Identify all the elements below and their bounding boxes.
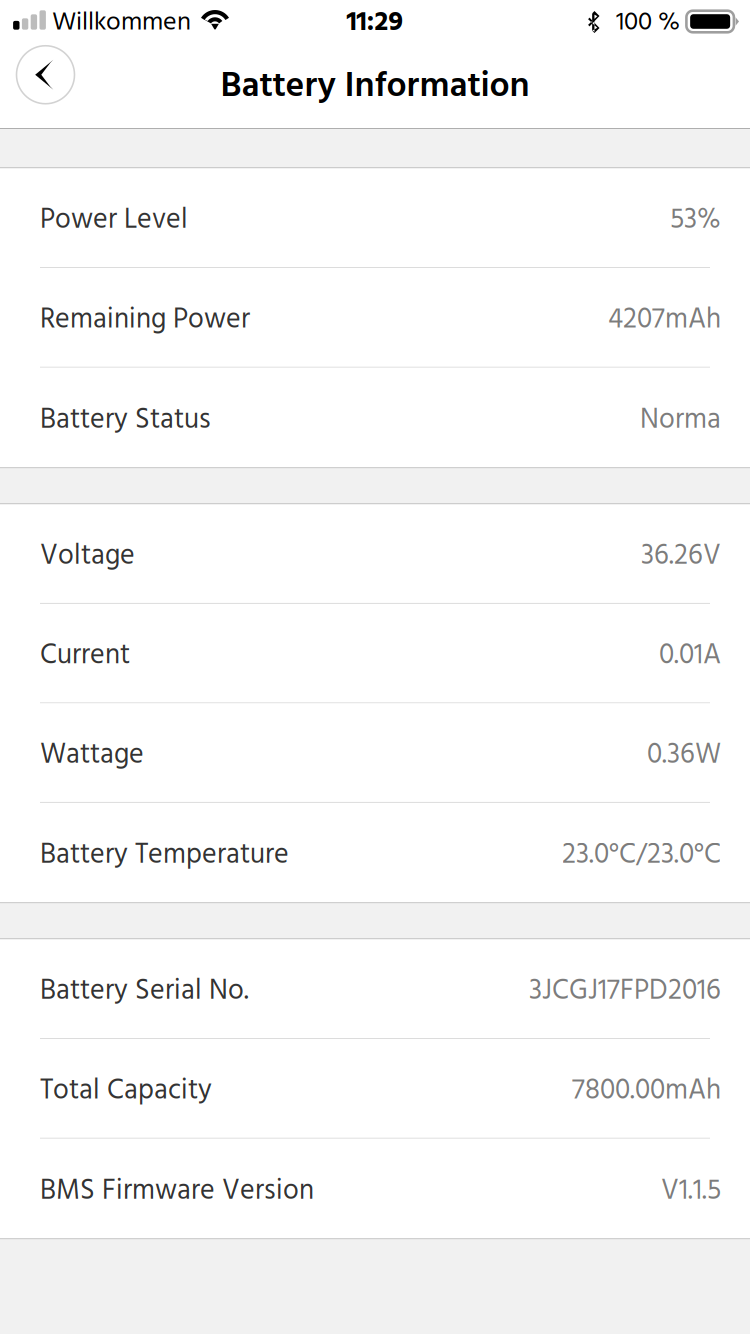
staticText: Battery Serial No. bbox=[40, 969, 249, 1014]
staticText: Battery Status bbox=[40, 398, 211, 443]
button[interactable]: Battery Serial No. bbox=[0, 939, 750, 1039]
button[interactable]: Back bbox=[16, 46, 74, 104]
button[interactable]: Battery Temperature bbox=[0, 803, 750, 902]
staticText: Total Capacity bbox=[40, 1069, 212, 1114]
button[interactable]: Total Capacity bbox=[0, 1039, 750, 1139]
button[interactable]: Current bbox=[0, 604, 750, 703]
staticText: Norma bbox=[640, 398, 721, 443]
button[interactable]: Battery Status bbox=[0, 368, 750, 467]
staticText: 0.36W bbox=[647, 733, 721, 778]
staticText: 0.01A bbox=[659, 634, 721, 678]
staticText: 36.26V bbox=[641, 534, 721, 579]
staticText: 23.0°C/23.0°C bbox=[562, 833, 721, 878]
staticText: Wattage bbox=[40, 733, 144, 778]
staticText: 100 % bbox=[616, 2, 680, 44]
button[interactable]: Remaining Power bbox=[0, 268, 750, 368]
staticText: Battery Information bbox=[220, 58, 529, 115]
staticText: Remaining Power bbox=[40, 298, 250, 343]
button[interactable]: Power Level bbox=[0, 168, 750, 268]
staticText: 53% bbox=[670, 198, 721, 243]
staticText: Battery Temperature bbox=[40, 833, 289, 878]
staticText: BMS Firmware Version bbox=[40, 1169, 314, 1214]
staticText: V1.1.5 bbox=[661, 1169, 721, 1214]
staticText: 7800.00mAh bbox=[572, 1069, 721, 1114]
staticText: Power Level bbox=[40, 198, 188, 243]
button[interactable]: Voltage bbox=[0, 504, 750, 604]
staticText: 3JCGJ17FPD2016 bbox=[529, 969, 721, 1014]
staticText: 4207mAh bbox=[608, 298, 721, 343]
staticText: Voltage bbox=[40, 534, 135, 579]
staticText: 11:29 bbox=[346, 1, 403, 45]
staticText: Willkommen bbox=[52, 2, 191, 44]
staticText: Current bbox=[40, 634, 130, 678]
button[interactable]: BMS Firmware Version bbox=[0, 1139, 750, 1238]
button[interactable]: Wattage bbox=[0, 703, 750, 803]
